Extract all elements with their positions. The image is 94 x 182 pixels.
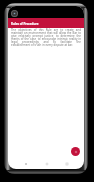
button[interactable]: Recents: [63, 160, 70, 167]
button[interactable]: Back: [22, 160, 29, 167]
button[interactable]: Rules of Procedure: [8, 18, 84, 28]
staticText: The objectives of this Rule are to creat…: [11, 28, 81, 47]
button[interactable]: Home: [43, 160, 50, 167]
staticText: Rules of Procedure: [11, 22, 39, 26]
button[interactable]: Add: [71, 147, 80, 156]
